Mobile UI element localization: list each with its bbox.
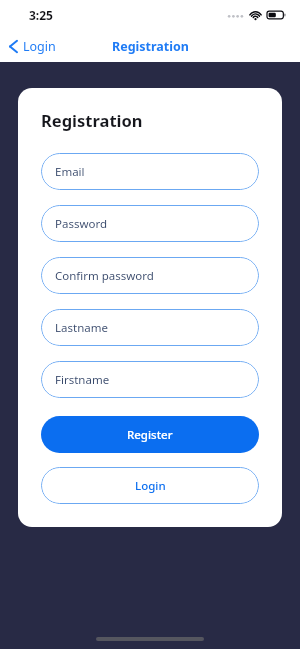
staticText: Lastname [55, 320, 108, 336]
staticText: 3:25 [29, 7, 53, 23]
button[interactable]: Confirm password [41, 257, 259, 294]
staticText: Email [55, 164, 85, 180]
button[interactable]: Register [41, 416, 259, 453]
other: Back [8, 39, 19, 54]
button[interactable]: Firstname [41, 361, 259, 398]
staticText: Registration [41, 109, 143, 131]
staticText: Login [23, 38, 56, 55]
staticText: Firstname [55, 372, 110, 388]
staticText: Registration [112, 38, 189, 55]
button[interactable]: Lastname [41, 309, 259, 346]
staticText: Login [135, 478, 166, 494]
button[interactable]: Back [0, 34, 66, 59]
staticText: Register [127, 427, 173, 443]
button[interactable]: Email [41, 153, 259, 190]
staticText: Confirm password [55, 268, 154, 284]
button[interactable]: Password [41, 205, 259, 242]
button[interactable]: Login [41, 467, 259, 504]
staticText: Password [55, 216, 108, 232]
